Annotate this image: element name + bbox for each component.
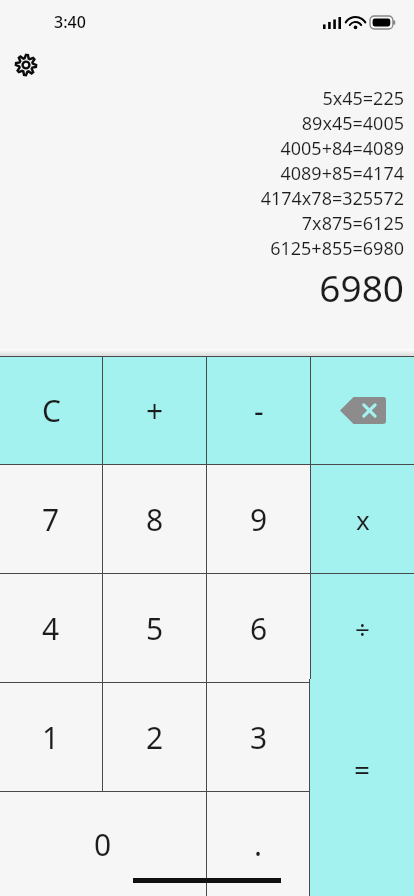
staticText: 7 (42, 499, 60, 540)
staticText: 0 (94, 824, 112, 865)
staticText: 4 (42, 608, 60, 649)
button[interactable]: 6 (207, 574, 310, 682)
button[interactable]: 5 (103, 574, 206, 682)
button[interactable]: 3 (207, 683, 310, 791)
staticText: - (254, 390, 264, 431)
button[interactable]: 9 (207, 465, 310, 573)
staticText: 1 (42, 717, 60, 758)
staticText: + (146, 390, 164, 431)
staticText: . (254, 824, 263, 865)
button[interactable]: 1 (0, 683, 102, 791)
button[interactable]: 8 (103, 465, 206, 573)
button[interactable]: - (207, 356, 310, 464)
button[interactable]: Settings (11, 50, 41, 80)
button[interactable]: x (311, 465, 414, 573)
button[interactable]: ÷ (311, 574, 414, 682)
staticText: 5x45=225 (322, 86, 404, 111)
button[interactable]: 2 (103, 683, 206, 791)
staticText: 89x45=4005 (301, 111, 404, 136)
staticText: = (354, 750, 371, 788)
staticText: 6 (250, 608, 268, 649)
button[interactable]: 0 (0, 792, 206, 896)
staticText: 5 (146, 608, 164, 649)
staticText: x (356, 502, 370, 537)
button[interactable]: + (103, 356, 206, 464)
button[interactable]: 7 (0, 465, 102, 573)
staticText: 4005+84=4089 (280, 136, 404, 161)
staticText: 3 (250, 717, 268, 758)
staticText: 3:40 (54, 11, 86, 33)
button[interactable]: Delete (311, 356, 414, 464)
staticText: 7x875=6125 (301, 211, 404, 236)
button[interactable]: = (310, 679, 414, 896)
staticText: 4089+85=4174 (280, 161, 404, 186)
button[interactable]: 4 (0, 574, 102, 682)
staticText: ÷ (355, 611, 370, 646)
staticText: C (42, 390, 61, 431)
staticText: 9 (250, 499, 268, 540)
staticText: 4174x78=325572 (260, 186, 404, 211)
button[interactable]: . (207, 792, 310, 896)
staticText: 6980 (319, 262, 404, 312)
staticText: 2 (146, 717, 164, 758)
button[interactable]: C (0, 356, 102, 464)
staticText: 6125+855=6980 (270, 236, 404, 261)
staticText: 8 (146, 499, 164, 540)
